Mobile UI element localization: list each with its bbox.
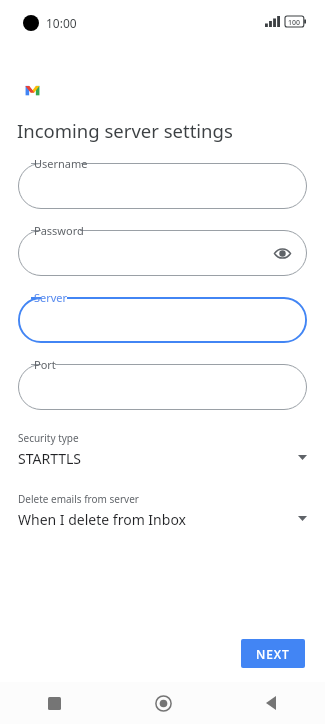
staticText: STARTTLS — [18, 449, 82, 468]
button[interactable]: Security type — [18, 431, 307, 477]
staticText: Delete emails from server — [18, 492, 139, 506]
staticText: Server — [34, 290, 68, 305]
button[interactable]: Password — [18, 230, 307, 276]
button[interactable]: Back — [217, 682, 325, 724]
staticText: Username — [34, 156, 88, 171]
button[interactable]: Recents — [0, 682, 109, 724]
button[interactable]: Username — [18, 163, 307, 209]
button[interactable]: NEXT — [241, 639, 305, 668]
staticText: Password — [34, 223, 84, 238]
button[interactable]: Port — [18, 364, 307, 410]
staticText: 100 — [288, 18, 301, 28]
staticText: 10:00 — [46, 15, 77, 31]
staticText: Security type — [18, 431, 79, 445]
button[interactable]: Server — [18, 297, 307, 343]
button[interactable]: Home — [109, 682, 217, 724]
other: Gmail — [22, 80, 43, 101]
staticText: Incoming server settings — [17, 118, 233, 143]
button[interactable]: Delete emails from server — [18, 492, 307, 538]
staticText: NEXT — [256, 646, 290, 662]
staticText: Port — [34, 357, 56, 372]
button[interactable]: Show password — [270, 241, 294, 265]
staticText: When I delete from Inbox — [18, 510, 186, 529]
